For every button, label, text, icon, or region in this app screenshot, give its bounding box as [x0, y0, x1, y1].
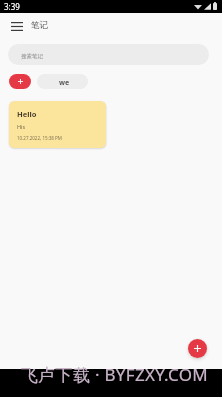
staticText: 飞卢下载 · BYFZXY.COM — [21, 363, 209, 386]
button[interactable]: Hello — [9, 101, 106, 148]
button[interactable]: Add note — [188, 339, 207, 358]
staticText: we — [59, 78, 70, 88]
staticText: 3:39 — [4, 1, 20, 12]
staticText: 10.27.2022, 15:38 PM — [17, 135, 62, 141]
staticText: 搜索笔记 — [21, 53, 43, 60]
staticText: His — [17, 123, 26, 130]
button[interactable]: 搜索笔记 — [8, 44, 209, 65]
staticText: 笔记 — [31, 20, 48, 31]
staticText: Hello — [17, 109, 37, 119]
button[interactable]: we — [37, 74, 88, 89]
button[interactable]: Add tag — [9, 74, 31, 89]
button[interactable]: Menu — [7, 16, 26, 36]
